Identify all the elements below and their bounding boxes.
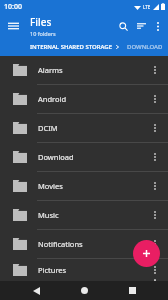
staticText: Music [38,210,146,220]
button[interactable]: More options for Notifications [146,235,164,253]
button[interactable]: More options [150,18,166,34]
staticText: Alarms [38,65,146,75]
button[interactable]: Create new [133,240,160,267]
button[interactable]: DCIM [0,114,168,143]
staticText: DCIM [38,123,146,133]
button[interactable]: Music [0,201,168,230]
button[interactable]: Movies [0,172,168,201]
staticText: 10 folders [30,30,56,37]
staticText: Android [38,94,146,104]
button[interactable]: Download [0,143,168,172]
button[interactable]: Sort [132,17,150,35]
button[interactable]: Alarms [0,56,168,85]
staticText: Pictures [38,265,146,275]
button[interactable]: Pictures [0,259,168,281]
button[interactable]: More options for Alarms [146,61,164,79]
button[interactable]: Recent apps [120,281,144,300]
button[interactable]: Back [24,281,48,300]
staticText: Notifications [38,239,146,249]
button[interactable]: INTERNAL SHARED STORAGE [30,43,120,51]
staticText: Movies [38,181,146,191]
button[interactable]: More options for Movies [146,177,164,195]
button[interactable]: Search [114,17,132,35]
button[interactable]: Open navigation drawer [5,17,22,34]
button[interactable]: Notifications [0,230,168,259]
staticText: Files [30,15,52,29]
button[interactable]: More options for Download [146,148,164,166]
button[interactable]: More options for Android [146,90,164,108]
staticText: Download [38,152,146,162]
button[interactable]: More options for Music [146,206,164,224]
button[interactable]: Home [72,281,96,300]
button[interactable]: DOWNLOAD [127,43,163,51]
button[interactable]: More options for Pictures [146,261,164,279]
button[interactable]: More options for DCIM [146,119,164,137]
button[interactable]: Android [0,85,168,114]
staticText: 10:00 [4,2,22,12]
staticText: LTE [143,4,151,10]
staticText: INTERNAL SHARED STORAGE [30,43,112,51]
